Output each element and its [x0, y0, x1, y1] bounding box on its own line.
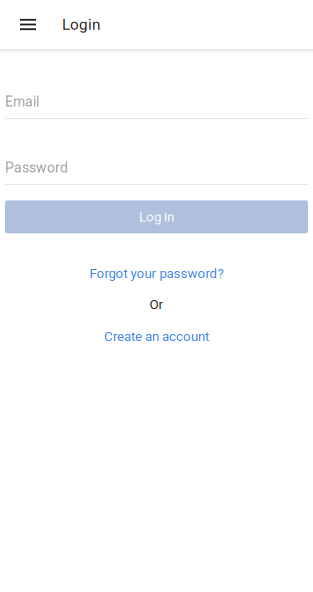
- button[interactable]: Create an account: [5, 330, 308, 342]
- button[interactable]: Log in: [5, 200, 308, 233]
- staticText: Forgot your password?: [89, 266, 223, 281]
- staticText: Or: [149, 297, 163, 312]
- staticText: Login: [62, 15, 100, 33]
- button[interactable]: Password: [5, 119, 308, 185]
- button[interactable]: Menu: [10, 0, 46, 49]
- staticText: Password: [5, 159, 68, 176]
- staticText: Create an account: [104, 329, 209, 344]
- staticText: Log in: [139, 209, 174, 225]
- button[interactable]: Forgot your password?: [5, 267, 308, 279]
- staticText: Email: [5, 94, 39, 110]
- button[interactable]: Email: [5, 55, 308, 119]
